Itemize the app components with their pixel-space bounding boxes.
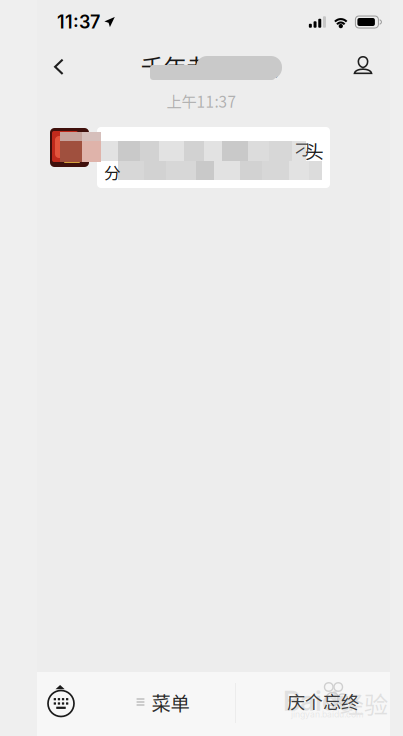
button[interactable]: Keyboard — [48, 683, 74, 714]
staticText: 分 — [104, 160, 121, 184]
staticText: 11:37 — [57, 11, 100, 33]
button[interactable]: 菜单 — [122, 680, 204, 724]
staticText: 头 — [305, 137, 324, 164]
button[interactable]: Contact profile — [341, 42, 385, 88]
staticText: 经验 — [340, 686, 388, 721]
staticText: Baidu — [283, 685, 354, 717]
staticText: 刁 — [294, 137, 310, 160]
button[interactable]: Back — [37, 44, 81, 90]
staticText: 上午11:37 — [166, 90, 236, 112]
button[interactable]: Baidu — [283, 676, 383, 724]
staticText: 千年老妖丫头 — [140, 49, 278, 83]
staticText: jingyan.baidu.com — [291, 709, 364, 719]
staticText: 菜单 — [151, 688, 189, 716]
staticText: 庆个忘终 — [287, 688, 359, 714]
